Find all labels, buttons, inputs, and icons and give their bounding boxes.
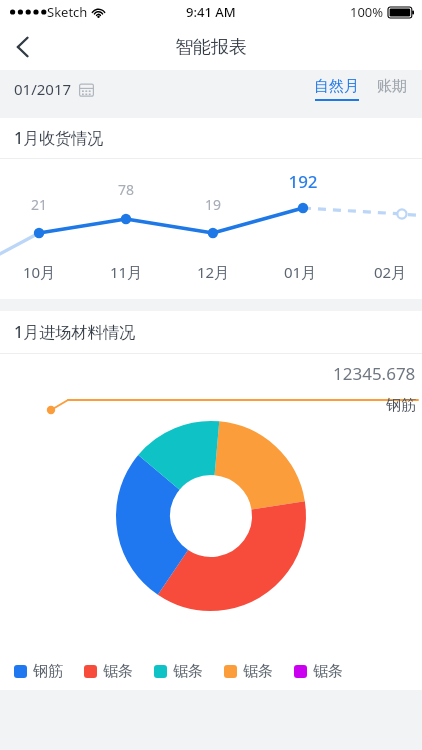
staticText: 锯条 [103,662,133,681]
staticText: Sketch [47,3,88,21]
button[interactable]: 01/2017 [14,79,94,99]
staticText: 账期 [377,77,407,96]
staticText: 智能报表 [175,36,247,59]
staticText: 01/2017 [14,79,72,99]
button[interactable]: 锯条 [154,662,203,681]
button[interactable]: 锯条 [224,662,273,681]
staticText: 12345.678 [333,362,416,385]
staticText: 19 [179,195,247,214]
staticText: 锯条 [313,662,343,681]
staticText: 192 [269,170,337,193]
staticText: 钢筋 [386,396,416,415]
staticText: 1月进场材料情况 [14,321,136,343]
staticText: 1月收货情况 [14,127,104,149]
button[interactable]: 自然月 [312,77,361,101]
button[interactable]: 钢筋 [14,662,63,681]
staticText: 钢筋 [33,662,63,681]
staticText: 9:41 AM [186,3,236,21]
staticText: 11月 [92,262,160,282]
staticText: 锯条 [243,662,273,681]
staticText: 21 [5,195,73,214]
staticText: 自然月 [314,77,359,96]
button[interactable]: 锯条 [294,662,343,681]
staticText: 10月 [5,262,73,282]
button[interactable]: 账期 [375,77,409,101]
staticText: 锯条 [173,662,203,681]
staticText: 12月 [179,262,247,282]
staticText: 01月 [266,262,334,282]
button[interactable]: Back [0,24,46,70]
staticText: 78 [92,180,160,199]
staticText: 02月 [356,262,422,282]
button[interactable]: 锯条 [84,662,133,681]
staticText: 100% [350,3,384,21]
